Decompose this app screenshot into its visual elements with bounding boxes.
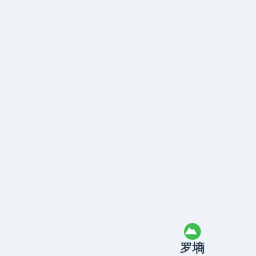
other: Open 罗墒 (184, 223, 201, 240)
staticText: 罗墒 (180, 240, 204, 255)
button[interactable]: Open 罗墒 (180, 223, 204, 255)
